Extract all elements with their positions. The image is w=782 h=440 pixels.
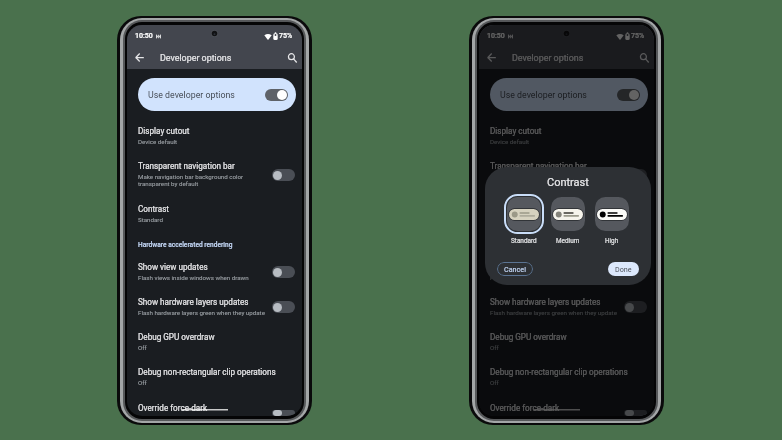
staticText: Hardware accelerated rendering [490, 241, 585, 249]
staticText: Off [490, 379, 499, 386]
button[interactable]: Back [131, 49, 148, 66]
staticText: Debug non-rectangular clip operations [490, 367, 628, 377]
staticText: Contrast [490, 204, 521, 214]
button[interactable] [265, 89, 288, 101]
button[interactable]: Transparent navigation bar [127, 153, 302, 196]
staticText: 10:50 [135, 32, 153, 40]
staticText: Debug non-rectangular clip operations [138, 367, 276, 377]
staticText: Flash views inside windows when drawn [138, 274, 249, 281]
button[interactable]: Search [284, 49, 301, 66]
staticText: Contrast [138, 204, 169, 214]
staticText: Show hardware layers updates [138, 297, 249, 307]
staticText: Transparent navigation bar [490, 161, 587, 171]
button[interactable]: Use developer options [138, 78, 296, 111]
button[interactable] [624, 266, 647, 278]
staticText: Use developer options [500, 90, 587, 100]
staticText: Off [138, 344, 147, 351]
staticText: Use developer options [148, 90, 235, 100]
staticText: Device default [490, 138, 530, 145]
button[interactable] [272, 301, 295, 313]
button[interactable] [548, 194, 588, 234]
button[interactable] [272, 410, 295, 416]
staticText: Override force-dark [490, 403, 560, 413]
staticText: Done [615, 265, 632, 273]
button[interactable]: Show view updates [127, 254, 302, 289]
button[interactable]: Contrast [127, 196, 302, 231]
button[interactable]: Show hardware layers updates [127, 289, 302, 324]
staticText: Flash views inside windows when drawn [490, 274, 601, 281]
staticText: Standard [490, 216, 515, 223]
staticText: Off [138, 379, 147, 386]
staticText: Display cutout [138, 126, 190, 136]
staticText: 75% [279, 32, 293, 40]
button[interactable] [624, 169, 647, 181]
staticText: Make navigation bar background color tra… [490, 173, 596, 188]
button[interactable]: Contrast [479, 196, 654, 231]
button[interactable]: Use developer options [490, 78, 648, 111]
button[interactable]: Display cutout [479, 118, 654, 153]
staticText: Override force-dark [138, 403, 208, 413]
staticText: Device default [138, 138, 178, 145]
button[interactable]: Override force-dark [479, 394, 654, 416]
staticText: Flash hardware layers green when they up… [138, 309, 265, 316]
staticText: High [605, 237, 619, 245]
button[interactable]: Override force-dark [127, 394, 302, 416]
staticText: Cancel [504, 265, 526, 273]
button[interactable] [624, 410, 647, 416]
button[interactable]: Display cutout [127, 118, 302, 153]
staticText: Show view updates [138, 262, 208, 272]
button[interactable]: Debug non-rectangular clip operations [127, 359, 302, 394]
staticText: Debug GPU overdraw [138, 332, 215, 342]
button[interactable] [272, 169, 295, 181]
button[interactable]: Show view updates [479, 254, 654, 289]
button[interactable]: Show hardware layers updates [479, 289, 654, 324]
button[interactable] [624, 301, 647, 313]
button[interactable]: Back [483, 49, 500, 66]
button[interactable] [592, 194, 632, 234]
staticText: Show hardware layers updates [490, 297, 601, 307]
staticText: Display cutout [490, 126, 542, 136]
button[interactable]: Search [636, 49, 653, 66]
button[interactable]: Done [608, 262, 639, 276]
staticText: Developer options [512, 53, 584, 63]
button[interactable] [504, 194, 544, 234]
staticText: Contrast [547, 176, 589, 189]
staticText: Make navigation bar background color tra… [138, 173, 244, 188]
staticText: Standard [138, 216, 163, 223]
staticText: 10:50 [487, 32, 505, 40]
staticText: Transparent navigation bar [138, 161, 235, 171]
staticText: Show view updates [490, 262, 560, 272]
button[interactable] [272, 266, 295, 278]
staticText: Off [490, 344, 499, 351]
staticText: Developer options [160, 53, 232, 63]
button[interactable]: Cancel [497, 262, 533, 276]
staticText: Flash hardware layers green when they up… [490, 309, 617, 316]
staticText: Hardware accelerated rendering [138, 241, 233, 249]
staticText: Standard [511, 237, 537, 245]
button[interactable]: Debug GPU overdraw [479, 324, 654, 359]
button[interactable]: Transparent navigation bar [479, 153, 654, 196]
staticText: Medium [556, 237, 580, 245]
staticText: Debug GPU overdraw [490, 332, 567, 342]
button[interactable] [617, 89, 640, 101]
staticText: 75% [631, 32, 645, 40]
button[interactable]: Debug GPU overdraw [127, 324, 302, 359]
button[interactable]: Debug non-rectangular clip operations [479, 359, 654, 394]
